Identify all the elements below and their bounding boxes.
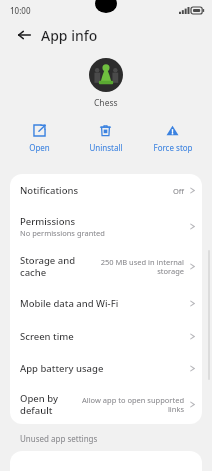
staticText: Chess: [94, 97, 118, 109]
staticText: Open: [29, 142, 50, 153]
button[interactable]: Permissions: [10, 207, 202, 245]
staticText: Uninstall: [89, 142, 123, 153]
button[interactable]: Force stop: [139, 119, 206, 157]
button[interactable]: Notifications: [10, 174, 202, 207]
staticText: Notifications: [20, 184, 79, 197]
staticText: App info: [41, 26, 98, 45]
button[interactable]: Storage and cache: [10, 245, 202, 287]
staticText: Open by default: [20, 392, 58, 416]
staticText: 250 MB used in internal storage: [100, 257, 184, 276]
staticText: Force stop: [153, 142, 193, 153]
staticText: Unused app settings: [20, 433, 98, 444]
staticText: Screen time: [20, 330, 74, 343]
staticText: Permissions: [20, 215, 76, 228]
staticText: Allow app to open supported links: [81, 395, 184, 414]
button[interactable]: Open: [6, 119, 72, 157]
staticText: Off: [172, 186, 184, 196]
button[interactable]: Screen time: [10, 320, 202, 352]
button[interactable]: Uninstall: [72, 119, 139, 157]
button[interactable]: Mobile data and Wi-Fi: [10, 287, 202, 320]
button[interactable]: App battery usage: [10, 352, 202, 384]
button[interactable]: Back: [14, 25, 34, 45]
staticText: Storage and cache: [20, 254, 76, 278]
staticText: Mobile data and Wi-Fi: [20, 297, 119, 310]
staticText: App battery usage: [20, 362, 104, 375]
button[interactable]: Open by default: [10, 384, 202, 424]
staticText: 10:00: [10, 5, 31, 16]
staticText: No permissions granted: [20, 228, 105, 238]
